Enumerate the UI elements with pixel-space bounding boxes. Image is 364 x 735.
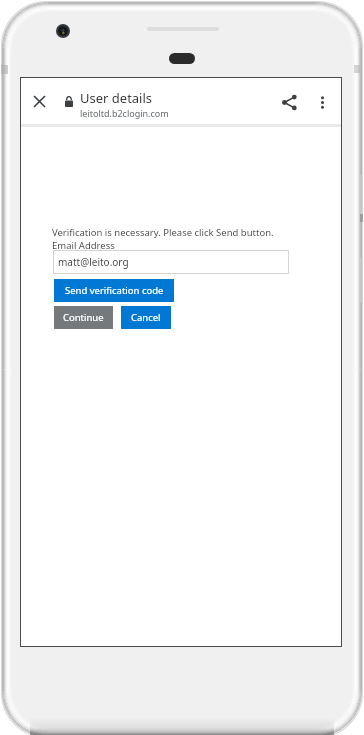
button[interactable]: Continue — [54, 306, 113, 329]
staticText: Verification is necessary. Please click … — [52, 226, 274, 239]
staticText: Cancel — [131, 311, 161, 324]
staticText: leitoltd.b2clogin.com — [80, 107, 169, 119]
button[interactable]: More options — [308, 85, 336, 119]
staticText: Email Address — [52, 239, 115, 252]
staticText: Continue — [63, 311, 104, 324]
staticText: Send verification code — [65, 284, 164, 297]
staticText: matt@leito.org — [58, 255, 129, 269]
button[interactable]: Cancel — [121, 306, 171, 329]
staticText: User details — [80, 89, 153, 107]
button[interactable]: Send verification code — [54, 279, 174, 302]
button[interactable]: Share — [274, 85, 304, 119]
button[interactable]: Close — [26, 83, 53, 119]
